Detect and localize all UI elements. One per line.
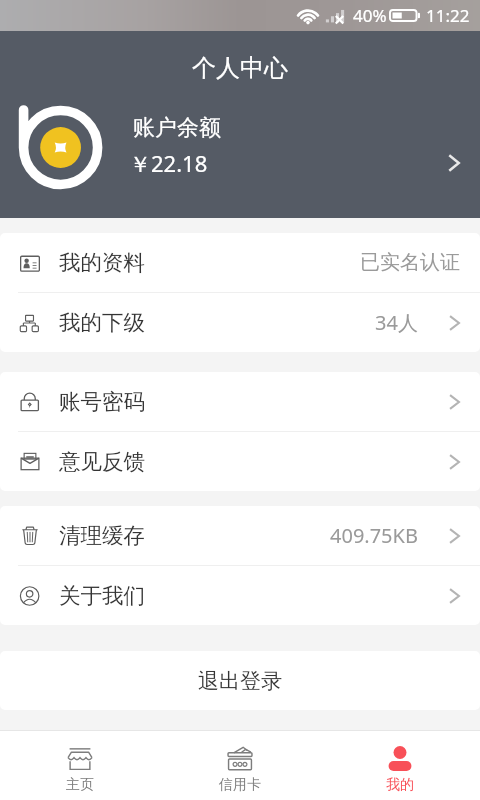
- staticText: 账户余额: [133, 114, 221, 142]
- staticText: 清理缓存: [59, 522, 145, 549]
- staticText: 个人中心: [192, 53, 288, 83]
- staticText: 信用卡: [219, 776, 261, 794]
- button[interactable]: 主页: [0, 731, 160, 800]
- button[interactable]: 清理缓存: [0, 506, 480, 565]
- staticText: 409.75KB: [330, 522, 418, 549]
- button[interactable]: 退出登录: [0, 651, 480, 710]
- staticText: 意见反馈: [59, 448, 145, 475]
- staticText: 退出登录: [198, 668, 282, 694]
- button[interactable]: 我的: [320, 731, 480, 800]
- button[interactable]: 账户余额: [0, 100, 480, 218]
- staticText: 账号密码: [59, 388, 145, 415]
- staticText: 主页: [66, 776, 94, 794]
- staticText: 我的: [386, 776, 414, 794]
- button[interactable]: 我的下级: [0, 293, 480, 352]
- staticText: 40%: [353, 4, 387, 27]
- staticText: 11:22: [426, 4, 470, 27]
- staticText: ￥22.18: [129, 148, 208, 178]
- button[interactable]: 信用卡: [160, 731, 320, 800]
- button[interactable]: 账号密码: [0, 372, 480, 431]
- staticText: 34人: [375, 309, 418, 336]
- staticText: 我的资料: [59, 249, 145, 276]
- staticText: 已实名认证: [360, 250, 460, 275]
- button[interactable]: 我的资料: [0, 233, 480, 292]
- button[interactable]: 关于我们: [0, 566, 480, 625]
- button[interactable]: 意见反馈: [0, 432, 480, 491]
- staticText: 关于我们: [59, 582, 145, 609]
- staticText: 我的下级: [59, 309, 145, 336]
